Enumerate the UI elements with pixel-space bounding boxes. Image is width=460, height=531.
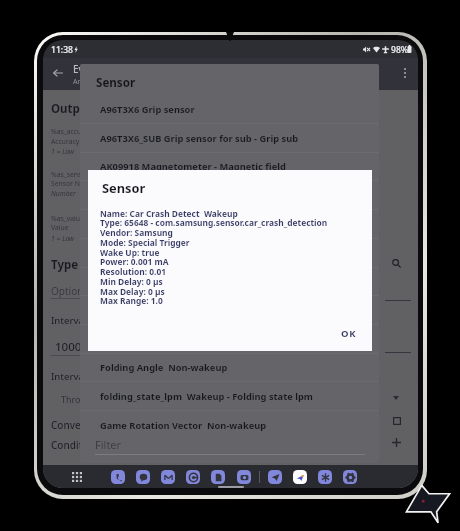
staticText: Accuracy <box>51 137 80 146</box>
button[interactable]: App 3 <box>186 470 200 484</box>
staticText: Output <box>51 101 93 117</box>
staticText: Device Orientation Non-wakeup <box>100 304 252 317</box>
staticText: Event Collector <box>73 62 145 76</box>
staticText: Wake Up: true <box>100 247 160 258</box>
button[interactable]: Device Orientation Non-wakeup <box>80 296 379 325</box>
button[interactable]: A96T3X6_SUB Grip sensor for sub - Grip s… <box>80 124 379 153</box>
staticText: Interval <box>51 314 87 327</box>
staticText: Conversion <box>51 418 105 432</box>
button[interactable]: App 8 <box>318 470 332 484</box>
staticText: Condition <box>51 438 98 452</box>
staticText: Power: 0.001 mA <box>100 256 169 267</box>
staticText: folding_state_lpm Wakeup - Folding state… <box>100 390 313 403</box>
button[interactable]: A96T3X6 Grip sensor <box>80 95 379 124</box>
button[interactable]: Search <box>389 256 404 271</box>
button[interactable]: Accelerometer Non-wakeup <box>80 181 379 210</box>
staticText: Accelerometer Wakeup <box>100 218 211 231</box>
button[interactable]: Flat Motion Non-wakeup <box>80 325 379 354</box>
staticText: Auto Rotation Non-wakeup <box>100 247 229 260</box>
button[interactable]: folding_state_lpm Wakeup - Folding state… <box>80 382 379 411</box>
staticText: Name: Car Crash Detect Wakeup <box>100 208 238 219</box>
staticText: Number <box>51 189 76 198</box>
staticText: Value <box>51 223 69 232</box>
button[interactable]: App 4 <box>211 470 225 484</box>
button[interactable]: Game Rotation Vector Non-wakeup <box>80 411 379 431</box>
staticText: %as_value <box>51 214 84 223</box>
staticText: Game Rotation Vector Non-wakeup <box>100 419 267 431</box>
button[interactable]: App 5 <box>237 470 251 484</box>
staticText: Car Crash Detect Wakeup <box>100 275 220 288</box>
button[interactable]: All apps <box>69 469 85 485</box>
staticText: Sensor Name <box>51 179 94 188</box>
staticText: 98% <box>391 44 409 56</box>
staticText: 1 = Low <box>51 234 75 243</box>
staticText: A96T3X6_SUB Grip sensor for sub - Grip s… <box>100 132 299 145</box>
staticText: Filter <box>95 437 122 452</box>
staticText: Sensor <box>96 75 136 91</box>
button[interactable]: Accelerometer Wakeup <box>80 210 379 239</box>
staticText: Folding Angle Non-wakeup <box>100 361 228 374</box>
button[interactable]: Car Crash Detect Wakeup <box>80 267 379 296</box>
button[interactable]: App 1 <box>136 470 150 484</box>
staticText: Throttle <box>61 393 95 405</box>
staticText: Max Range: 1.0 <box>100 295 163 306</box>
button[interactable]: More options <box>395 63 414 82</box>
button[interactable]: CANCEL <box>340 63 384 83</box>
button[interactable]: Back <box>48 63 67 82</box>
staticText: 1 = Low <box>51 147 75 156</box>
staticText: %as_sensor <box>51 170 89 179</box>
staticText: Interval <box>51 370 87 383</box>
staticText: %as_accuracy <box>51 127 95 136</box>
staticText: Optional <box>51 284 92 298</box>
staticText: Android <box>73 76 100 86</box>
staticText: 11:38 <box>51 44 74 56</box>
button[interactable]: App 7 <box>293 470 307 484</box>
button[interactable]: App 2 <box>161 470 175 484</box>
button[interactable]: Folding Angle Non-wakeup <box>80 353 379 382</box>
button[interactable]: Toggle option <box>389 413 404 428</box>
staticText: Vendor: Samsung <box>100 227 173 238</box>
button[interactable]: OK <box>337 324 361 343</box>
staticText: Type: 65648 - com.samsung.sensor.car_cra… <box>100 217 328 228</box>
staticText: CANCEL <box>344 67 380 79</box>
staticText: Accelerometer Non-wakeup <box>100 189 233 202</box>
button[interactable]: App 6 <box>268 470 282 484</box>
staticText: Min Delay: 0 µs <box>100 276 163 287</box>
staticText: A96T3X6 Grip sensor <box>100 103 195 116</box>
button[interactable]: App 9 <box>343 470 357 484</box>
button[interactable]: AK09918 Magnetometer - Magnetic field <box>80 152 379 181</box>
staticText: 1000 <box>55 339 82 355</box>
button[interactable]: App 0 <box>111 470 125 484</box>
staticText: Sensor <box>102 179 146 196</box>
button[interactable]: Auto Rotation Non-wakeup <box>80 239 379 268</box>
button[interactable]: Add <box>389 435 404 450</box>
staticText: OK <box>341 327 357 340</box>
staticText: Resolution: 0.01 <box>100 266 167 277</box>
staticText: Type <box>51 257 79 273</box>
staticText: AK09918 Magnetometer - Magnetic field <box>100 160 286 173</box>
staticText: Mode: Special Trigger <box>100 237 190 248</box>
staticText: Max Delay: 0 µs <box>100 286 165 297</box>
